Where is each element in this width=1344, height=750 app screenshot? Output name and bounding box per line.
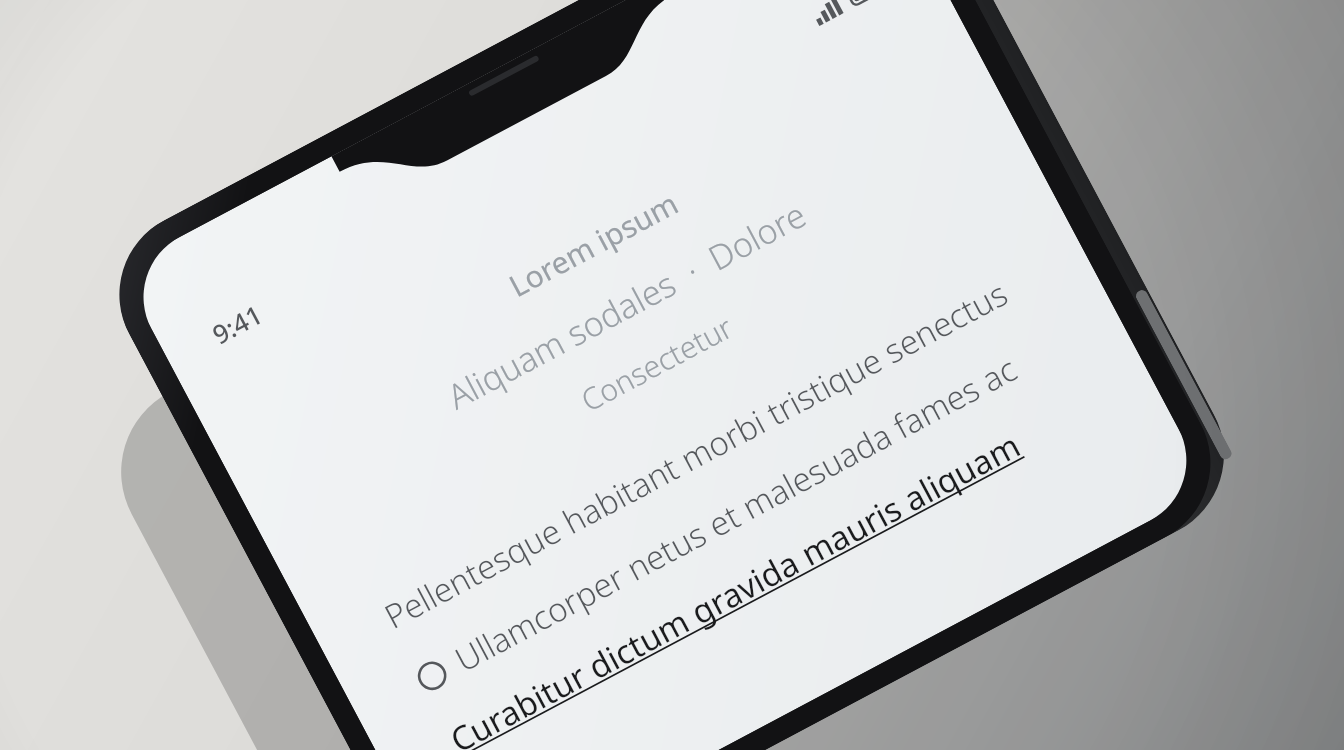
button[interactable]: Silvanus settings <box>450 488 1210 750</box>
staticText: Curabitur dictum gravida mauris aliquam <box>442 422 1028 750</box>
staticText: Lorem ipsum <box>502 182 685 306</box>
staticText: Ullamcorper netus et malesuada fames ac <box>447 346 1024 682</box>
staticText: Aliquam sodales · Dolore <box>439 191 813 419</box>
staticText: Pellentesque habitant morbi tristique se… <box>376 271 1015 639</box>
staticText: 9:41 <box>206 296 268 351</box>
staticText: Consectetur <box>574 306 740 420</box>
other: Volume <box>1134 288 1234 461</box>
